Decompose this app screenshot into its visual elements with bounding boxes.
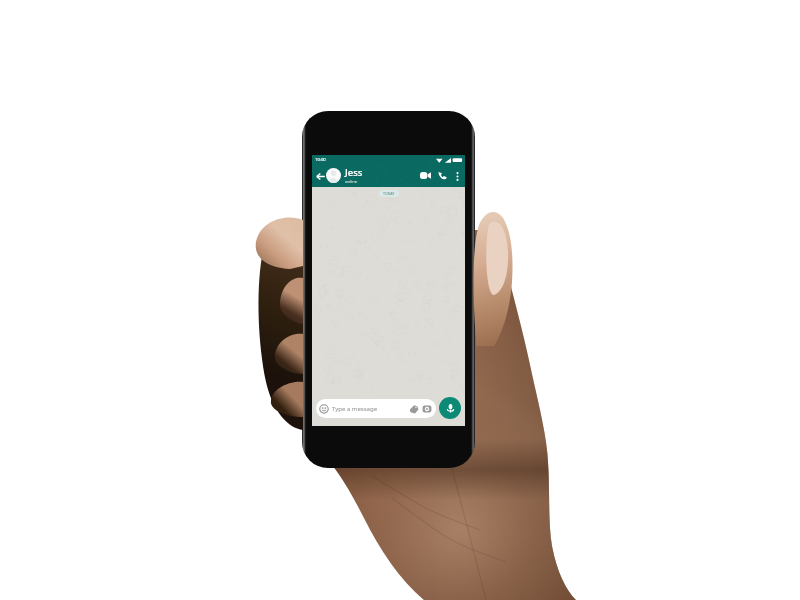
staticText: Type a message — [332, 405, 378, 413]
button[interactable]: More options — [451, 170, 463, 182]
staticText: TODAY — [383, 191, 395, 196]
staticText: 10:00 — [315, 157, 326, 163]
button[interactable]: Back — [314, 170, 326, 182]
button[interactable]: Call — [435, 168, 450, 183]
button[interactable]: Video call — [418, 168, 433, 183]
staticText: online — [345, 179, 358, 185]
staticText: Jess — [345, 166, 363, 179]
button[interactable]: Voice message — [439, 397, 461, 419]
button[interactable]: Type a message — [316, 399, 436, 418]
